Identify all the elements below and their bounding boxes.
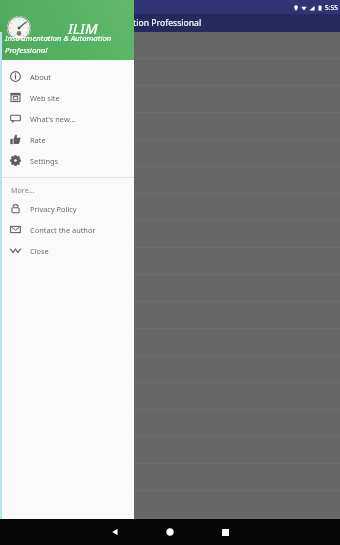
button[interactable]: Privacy Policy xyxy=(0,198,134,219)
button[interactable]: Web site xyxy=(0,87,134,108)
staticText: Web site xyxy=(30,93,60,103)
staticText: Instrumentation & Automation Professiona… xyxy=(5,33,112,55)
staticText: More... xyxy=(11,185,35,195)
button[interactable]: What's new... xyxy=(0,108,134,129)
button[interactable]: Close xyxy=(0,240,134,261)
staticText: ILIM xyxy=(68,18,98,38)
staticText: Close xyxy=(30,246,49,256)
staticText: Rate xyxy=(30,135,46,145)
button[interactable]: Home xyxy=(157,519,183,545)
button[interactable]: About xyxy=(0,66,134,87)
button[interactable]: Back xyxy=(0,14,18,32)
button[interactable]: Rate xyxy=(0,129,134,150)
staticText: 5:55 xyxy=(325,3,338,12)
button[interactable]: Recent apps xyxy=(212,519,238,545)
staticText: Contact the author xyxy=(30,225,96,235)
staticText: Privacy Policy xyxy=(30,204,77,214)
button[interactable]: Contact the author xyxy=(0,219,134,240)
staticText: What's new... xyxy=(30,114,76,124)
button[interactable]: Settings xyxy=(0,150,134,171)
staticText: Settings xyxy=(30,156,59,166)
staticText: About xyxy=(30,72,51,82)
staticText: Instrumentation & Automation Professiona… xyxy=(23,17,202,29)
button[interactable]: Back xyxy=(102,519,128,545)
